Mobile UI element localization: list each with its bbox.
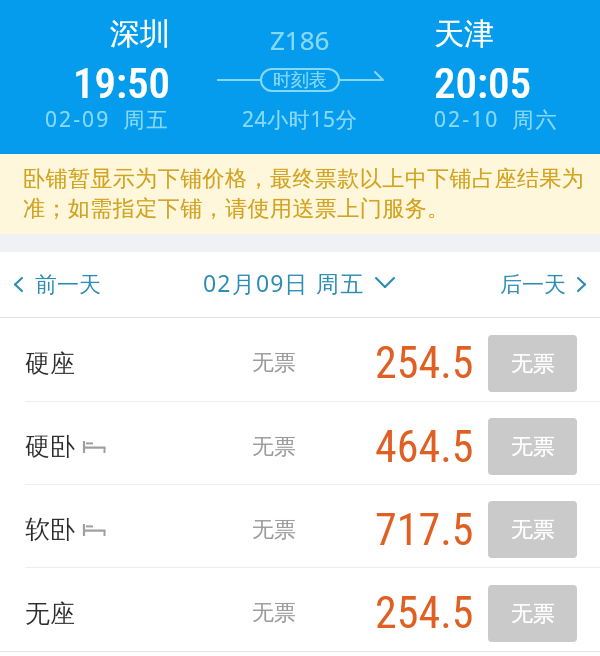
staticText: 无票 [511, 600, 555, 628]
button[interactable]: 02月09日 周五 [160, 252, 440, 317]
staticText: 无票 [252, 516, 296, 544]
other: Previous day [14, 277, 23, 292]
button[interactable]: 无票 [488, 585, 577, 642]
staticText: 无票 [511, 433, 555, 461]
staticText: 硬卧 [25, 431, 75, 462]
staticText: 硬座 [25, 348, 75, 379]
button[interactable]: 无票 [488, 501, 577, 558]
button[interactable]: 软卧 [0, 485, 600, 567]
staticText: 717.5 [375, 504, 474, 556]
staticText: 深圳 [110, 15, 170, 53]
button[interactable]: 硬座 [0, 318, 600, 401]
staticText: 软卧 [25, 514, 75, 545]
staticText: 卧铺暂显示为下铺价格，最终票款以上中下铺占座结果为准；如需指定下铺，请使用送票上… [23, 165, 592, 223]
staticText: 02-10 周六 [434, 105, 559, 134]
staticText: 02-09 周五 [45, 105, 170, 134]
staticText: 天津 [434, 15, 494, 53]
staticText: 02月09日 周五 [203, 267, 365, 298]
staticText: 前一天 [35, 271, 101, 299]
button[interactable]: 时刻表 [260, 68, 340, 92]
staticText: 24小时15分 [242, 105, 358, 134]
staticText: 无座 [25, 598, 75, 629]
staticText: 无票 [252, 349, 296, 377]
staticText: 464.5 [375, 421, 474, 473]
button[interactable]: 无票 [488, 418, 577, 475]
staticText: 254.5 [375, 587, 474, 639]
button[interactable]: 无座 [0, 568, 600, 651]
other: Sleeper berth [83, 524, 106, 536]
button[interactable]: Previous day [0, 252, 160, 317]
staticText: 无票 [252, 433, 296, 461]
button[interactable]: 无票 [488, 335, 577, 392]
staticText: 无票 [511, 516, 555, 544]
button[interactable]: 后一天 [440, 252, 600, 317]
button[interactable]: 硬卧 [0, 402, 600, 484]
staticText: Z186 [270, 22, 330, 57]
staticText: 无票 [252, 599, 296, 627]
staticText: 20:05 [434, 58, 531, 108]
staticText: 254.5 [375, 337, 474, 389]
staticText: 后一天 [500, 271, 566, 299]
other: Next day [577, 277, 586, 292]
staticText: 无票 [511, 350, 555, 378]
other: Sleeper berth [83, 441, 106, 453]
staticText: 19:50 [73, 58, 170, 108]
staticText: 时刻表 [273, 69, 327, 92]
